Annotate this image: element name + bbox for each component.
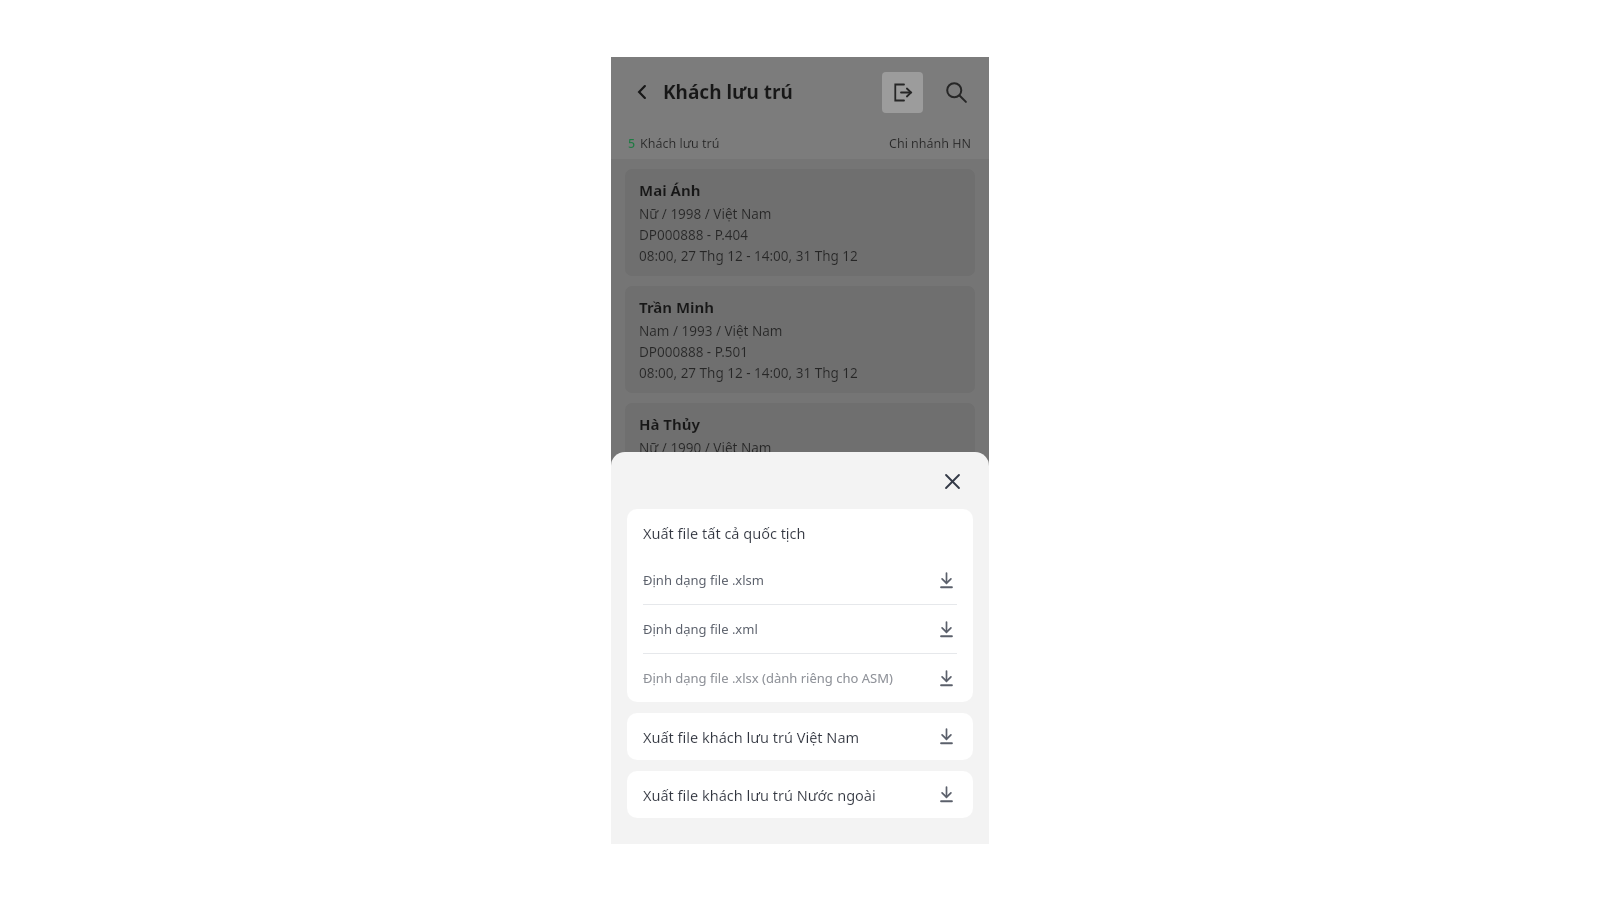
staticText: Khách lưu trú <box>663 79 793 105</box>
staticText: Nam / 1993 / Việt Nam <box>639 322 783 340</box>
staticText: Mai Ánh <box>639 180 701 200</box>
staticText: Hà Thủy <box>639 414 701 434</box>
staticText: 08:00, 27 Thg 12 - 14:00, 31 Thg 12 <box>639 247 858 265</box>
button[interactable]: Xuất file khách lưu trú Nước ngoài <box>627 771 973 818</box>
staticText: Chi nhánh HN <box>889 135 972 152</box>
button[interactable]: Mai Ánh <box>625 169 975 276</box>
button[interactable]: Export <box>882 72 923 113</box>
staticText: Định dạng file .xlsx (dành riêng cho ASM… <box>643 669 893 687</box>
button[interactable]: Xuất file khách lưu trú Việt Nam <box>627 713 973 760</box>
staticText: 5 <box>628 135 636 152</box>
staticText: Xuất file khách lưu trú Việt Nam <box>643 727 860 747</box>
staticText: Nữ / 1990 / Việt Nam <box>639 439 772 457</box>
staticText: Xuất file khách lưu trú Nước ngoài <box>643 785 876 805</box>
button[interactable]: Định dạng file .xml <box>627 605 973 654</box>
button[interactable]: Search <box>939 75 973 109</box>
staticText: Trần Minh <box>639 297 715 317</box>
button[interactable]: Trần Minh <box>625 286 975 393</box>
staticText: Nữ / 1998 / Việt Nam <box>639 205 772 223</box>
staticText: Định dạng file .xml <box>643 620 758 638</box>
button[interactable]: Định dạng file .xlsm <box>627 556 973 605</box>
staticText: Khách lưu trú <box>640 135 720 152</box>
staticText: DP000888 - P.501 <box>639 343 748 361</box>
staticText: 08:00, 27 Thg 12 - 14:00, 31 Thg 12 <box>639 364 858 382</box>
staticText: Xuất file tất cả quốc tịch <box>643 523 806 543</box>
button[interactable]: Close <box>936 465 968 497</box>
staticText: DP000888 - P.404 <box>639 226 748 244</box>
staticText: Định dạng file .xlsm <box>643 571 764 589</box>
button[interactable]: Định dạng file .xlsx (dành riêng cho ASM… <box>627 654 973 702</box>
button[interactable]: Hà Thủy <box>625 403 975 510</box>
button[interactable]: Back <box>627 77 657 107</box>
